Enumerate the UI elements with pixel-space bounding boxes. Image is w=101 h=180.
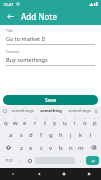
button[interactable]: b: [56, 141, 66, 154]
staticText: x: [29, 144, 33, 152]
staticText: 7: [64, 116, 66, 119]
button[interactable]: Save: [3, 95, 98, 105]
staticText: a: [9, 131, 13, 139]
staticText: r: [34, 119, 37, 127]
button[interactable]: 5: [40, 115, 50, 128]
staticText: Title: [6, 28, 13, 33]
staticText: y: [53, 119, 57, 127]
button[interactable]: g: [46, 128, 56, 141]
staticText: v: [49, 144, 53, 152]
staticText: c: [40, 144, 43, 152]
button[interactable]: d: [26, 128, 36, 141]
button[interactable]: Enter: [86, 156, 99, 165]
button[interactable]: Recents: [76, 168, 101, 180]
button[interactable]: f: [36, 128, 46, 141]
button[interactable]: s: [16, 128, 26, 141]
staticText: 4: [35, 116, 37, 119]
button[interactable]: somethings: [65, 106, 93, 115]
button[interactable]: Back: [5, 11, 16, 22]
staticText: 12:47: [3, 2, 14, 7]
staticText: 2: [15, 116, 17, 119]
staticText: 1: [5, 116, 7, 119]
staticText: q: [4, 119, 8, 127]
button[interactable]: somethings: [8, 106, 37, 115]
button[interactable]: Emoji: [25, 154, 34, 167]
staticText: g: [49, 131, 53, 139]
staticText: somethings: [68, 108, 91, 113]
button[interactable]: c: [36, 141, 46, 154]
staticText: Buy somethings: [6, 56, 48, 63]
staticText: ,: [20, 157, 22, 164]
staticText: Save: [45, 97, 57, 104]
button[interactable]: .: [76, 154, 85, 167]
staticText: n: [69, 144, 73, 152]
staticText: 6: [54, 116, 56, 119]
staticText: 9: [84, 116, 86, 119]
button[interactable]: Home: [51, 168, 76, 180]
staticText: i: [74, 119, 76, 127]
button[interactable]: 1: [1, 115, 10, 128]
staticText: e: [23, 119, 27, 127]
button[interactable]: h: [56, 128, 66, 141]
staticText: o: [83, 119, 87, 127]
button[interactable]: something: [37, 106, 65, 115]
button[interactable]: j: [66, 128, 76, 141]
staticText: l: [90, 131, 92, 139]
staticText: f: [40, 131, 43, 139]
staticText: m: [78, 144, 84, 152]
staticText: 3: [24, 116, 26, 119]
staticText: p: [93, 119, 97, 127]
button[interactable]: 9: [80, 115, 90, 128]
button[interactable]: 8: [70, 115, 80, 128]
button[interactable]: x: [26, 141, 36, 154]
staticText: j: [70, 131, 72, 139]
staticText: d: [29, 131, 33, 139]
button[interactable]: Shift: [1, 141, 16, 154]
staticText: h: [59, 131, 63, 139]
button[interactable]: 2: [10, 115, 20, 128]
staticText: something: [40, 108, 62, 113]
staticText: w: [13, 119, 18, 127]
staticText: 0: [94, 116, 96, 119]
staticText: z: [20, 144, 23, 152]
staticText: u: [63, 119, 67, 127]
staticText: ?123: [5, 158, 13, 163]
button[interactable]: Voice: [2, 108, 8, 114]
button[interactable]: Hide keyboard: [0, 168, 26, 180]
staticText: Content: [6, 49, 20, 54]
staticText: k: [79, 131, 83, 139]
button[interactable]: Backspace: [86, 141, 100, 154]
button[interactable]: 4: [30, 115, 40, 128]
button[interactable]: ,: [16, 154, 25, 167]
button[interactable]: 0: [90, 115, 100, 128]
staticText: Go to market D: [6, 35, 46, 42]
button[interactable]: 3: [20, 115, 30, 128]
button[interactable]: Back: [26, 168, 51, 180]
button[interactable]: a: [5, 128, 16, 141]
button[interactable]: v: [46, 141, 56, 154]
staticText: Add Note: [21, 11, 57, 22]
staticText: 5: [45, 116, 47, 119]
button[interactable]: m: [76, 141, 86, 154]
staticText: b: [59, 144, 63, 152]
button[interactable]: l: [86, 128, 96, 141]
button[interactable]: ?123: [1, 154, 16, 167]
button[interactable]: n: [66, 141, 76, 154]
staticText: .: [80, 157, 82, 164]
button[interactable]: 6: [50, 115, 60, 128]
button[interactable]: More suggestions: [93, 108, 99, 114]
button[interactable]: k: [76, 128, 86, 141]
button[interactable]: z: [16, 141, 26, 154]
staticText: s: [20, 131, 23, 139]
staticText: somethings: [11, 108, 34, 113]
button[interactable]: 7: [60, 115, 70, 128]
staticText: t: [44, 119, 47, 127]
staticText: 8: [74, 116, 76, 119]
